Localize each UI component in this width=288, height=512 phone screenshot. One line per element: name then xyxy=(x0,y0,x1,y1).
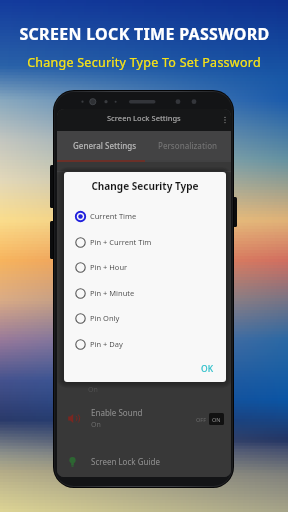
staticText: SCREEN LOCK TIME PASSWORD xyxy=(19,23,270,45)
button[interactable]: Personalization xyxy=(144,131,231,160)
button[interactable]: Pin + Minute xyxy=(64,280,226,306)
staticText: Enable Sound xyxy=(91,407,143,418)
button[interactable]: Screen Lock Guide xyxy=(57,444,231,477)
staticText: General Settings xyxy=(73,140,137,151)
staticText: On xyxy=(88,385,98,395)
button[interactable]: Enable Sound xyxy=(57,401,231,436)
staticText: ON xyxy=(212,416,221,423)
staticText: Change Security Type To Set Password xyxy=(27,54,261,71)
staticText: Pin + Minute xyxy=(90,288,135,298)
staticText: Pin + Day xyxy=(90,339,123,349)
staticText: Pin Only xyxy=(90,313,120,323)
button[interactable]: ON xyxy=(209,413,224,425)
staticText: Screen Lock Settings xyxy=(107,113,181,123)
button[interactable]: Pin + Hour xyxy=(64,254,226,280)
staticText: Change Security Type xyxy=(64,179,226,193)
button[interactable]: Pin + Day xyxy=(64,331,226,357)
button[interactable]: Pin Only xyxy=(64,305,226,331)
button[interactable]: More options xyxy=(219,111,231,129)
staticText: OK xyxy=(201,363,214,375)
staticText: OFF xyxy=(196,416,207,423)
staticText: Screen Lock Guide xyxy=(91,456,160,467)
staticText: Current Time xyxy=(90,211,137,221)
staticText: Pin + Current Tim xyxy=(90,237,152,247)
button[interactable]: OK xyxy=(197,360,218,378)
staticText: Personalization xyxy=(158,140,218,151)
button[interactable]: Current Time xyxy=(64,203,226,229)
staticText: On xyxy=(91,420,101,430)
button[interactable]: General Settings xyxy=(57,131,144,160)
button[interactable]: Pin + Current Tim xyxy=(64,229,226,255)
staticText: Pin + Hour xyxy=(90,262,128,272)
